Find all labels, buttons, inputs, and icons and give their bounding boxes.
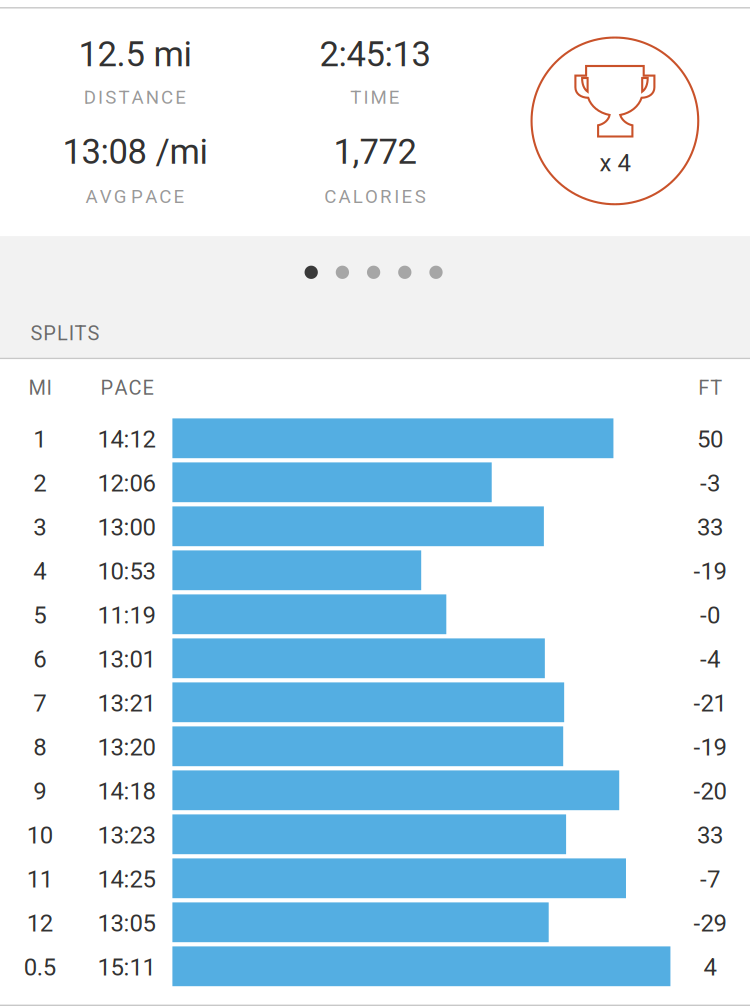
staticText: 33 [697,821,723,849]
staticText: 8 [33,733,46,761]
staticText: 7 [33,689,46,717]
staticText: P [131,186,143,208]
staticText: -21 [693,689,726,717]
staticText: C [159,186,171,208]
staticText: 11:19 [98,601,156,629]
staticText: I [98,86,103,108]
staticText: I [394,186,399,208]
staticText: 13:23 [98,821,156,849]
staticText: 33 [697,513,723,541]
staticText: V [100,186,112,208]
staticText: 4 [33,557,46,585]
staticText: 1,772 [333,132,416,172]
staticText: C [324,186,336,208]
staticText: N [146,86,159,108]
staticText: 13:01 [98,645,156,673]
staticText: M [29,376,46,399]
staticText: 12 [27,909,53,937]
staticText: 11 [27,865,53,893]
staticText: -0 [700,601,720,629]
staticText: 0.5 [24,953,56,981]
staticText: -29 [693,909,726,937]
staticText: 9 [33,777,46,805]
staticText: S [105,86,116,108]
staticText: -19 [693,733,726,761]
staticText: E [142,376,153,399]
staticText: 12.5 mi [78,34,191,75]
staticText: P [100,376,113,399]
staticText: 14:18 [98,777,156,805]
staticText: 5 [33,601,46,629]
staticText: I [363,86,368,108]
staticText: 13:05 [98,909,156,937]
staticText: -20 [693,777,726,805]
staticText: O [365,186,378,208]
staticText: 15:11 [98,953,156,981]
staticText: L [57,322,68,345]
staticText: E [401,186,412,208]
staticText: E [389,86,400,108]
staticText: F [698,376,709,399]
staticText: 13:08 /mi [62,132,207,172]
staticText: 3 [33,513,46,541]
staticText: T [350,86,361,108]
staticText: T [75,322,87,345]
staticText: 50 [697,425,723,453]
staticText: -3 [700,469,720,497]
staticText: 13:21 [98,689,156,717]
staticText: S [30,322,42,345]
staticText: 12:06 [98,469,156,497]
staticText: S [415,186,426,208]
staticText: C [161,86,173,108]
staticText: I [47,376,52,399]
staticText: 13:00 [98,513,156,541]
staticText: I [69,322,74,345]
staticText: C [128,376,141,399]
staticText: A [85,186,97,208]
staticText: A [145,186,157,208]
staticText: E [175,86,186,108]
staticText: 6 [33,645,46,673]
staticText: -4 [700,645,720,673]
staticText: x 4 [599,149,630,177]
staticText: 14:25 [98,865,156,893]
staticText: R [380,186,392,208]
staticText: L [353,186,363,208]
staticText: 4 [703,953,716,981]
staticText: 2:45:13 [319,34,430,75]
staticText: 10:53 [98,557,156,585]
staticText: A [132,86,144,108]
staticText: 14:12 [98,425,156,453]
staticText: M [371,86,387,108]
button[interactable]: Achievements, 4 trophies [531,38,698,204]
staticText: 2 [33,469,46,497]
staticText: T [118,86,129,108]
staticText: S [87,322,99,345]
staticText: A [114,376,127,399]
staticText: 13:20 [98,733,156,761]
staticText: -7 [700,865,720,893]
staticText: G [114,186,127,208]
staticText: -19 [693,557,726,585]
staticText: A [338,186,350,208]
staticText: T [710,376,722,399]
staticText: 10 [27,821,53,849]
staticText: 1 [33,425,46,453]
staticText: E [173,186,184,208]
staticText: D [84,86,96,108]
staticText: P [43,322,56,345]
